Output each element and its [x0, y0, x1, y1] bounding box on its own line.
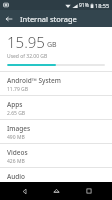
staticText: Android™ System	[7, 76, 61, 85]
staticText: Audio	[7, 172, 26, 181]
staticText: Videos	[7, 148, 28, 157]
button[interactable]: Back	[15, 182, 33, 200]
button[interactable]: Back	[0, 10, 17, 27]
staticText: 91%	[79, 2, 89, 9]
button[interactable]: Audio	[0, 167, 112, 182]
button[interactable]: Android™ System	[0, 71, 112, 95]
button[interactable]: Images	[0, 119, 112, 143]
staticText: Internal storage	[20, 14, 77, 24]
staticText: Images	[7, 124, 31, 133]
button[interactable]: Videos	[0, 143, 112, 167]
staticText: 15.95	[7, 32, 45, 52]
staticText: 426 MB	[7, 158, 25, 165]
staticText: GB	[47, 40, 57, 50]
staticText: 2.65 GB	[7, 110, 26, 117]
staticText: Used of 32.00 GB	[7, 53, 48, 60]
staticText: 11.79 GB	[7, 86, 28, 93]
button[interactable]: Apps	[0, 95, 112, 119]
staticText: 490 MB	[7, 134, 25, 141]
button[interactable]: Recent apps	[80, 182, 98, 200]
staticText: 18:55	[95, 2, 110, 9]
staticText: Apps	[7, 100, 23, 109]
button[interactable]: Home	[47, 182, 65, 200]
